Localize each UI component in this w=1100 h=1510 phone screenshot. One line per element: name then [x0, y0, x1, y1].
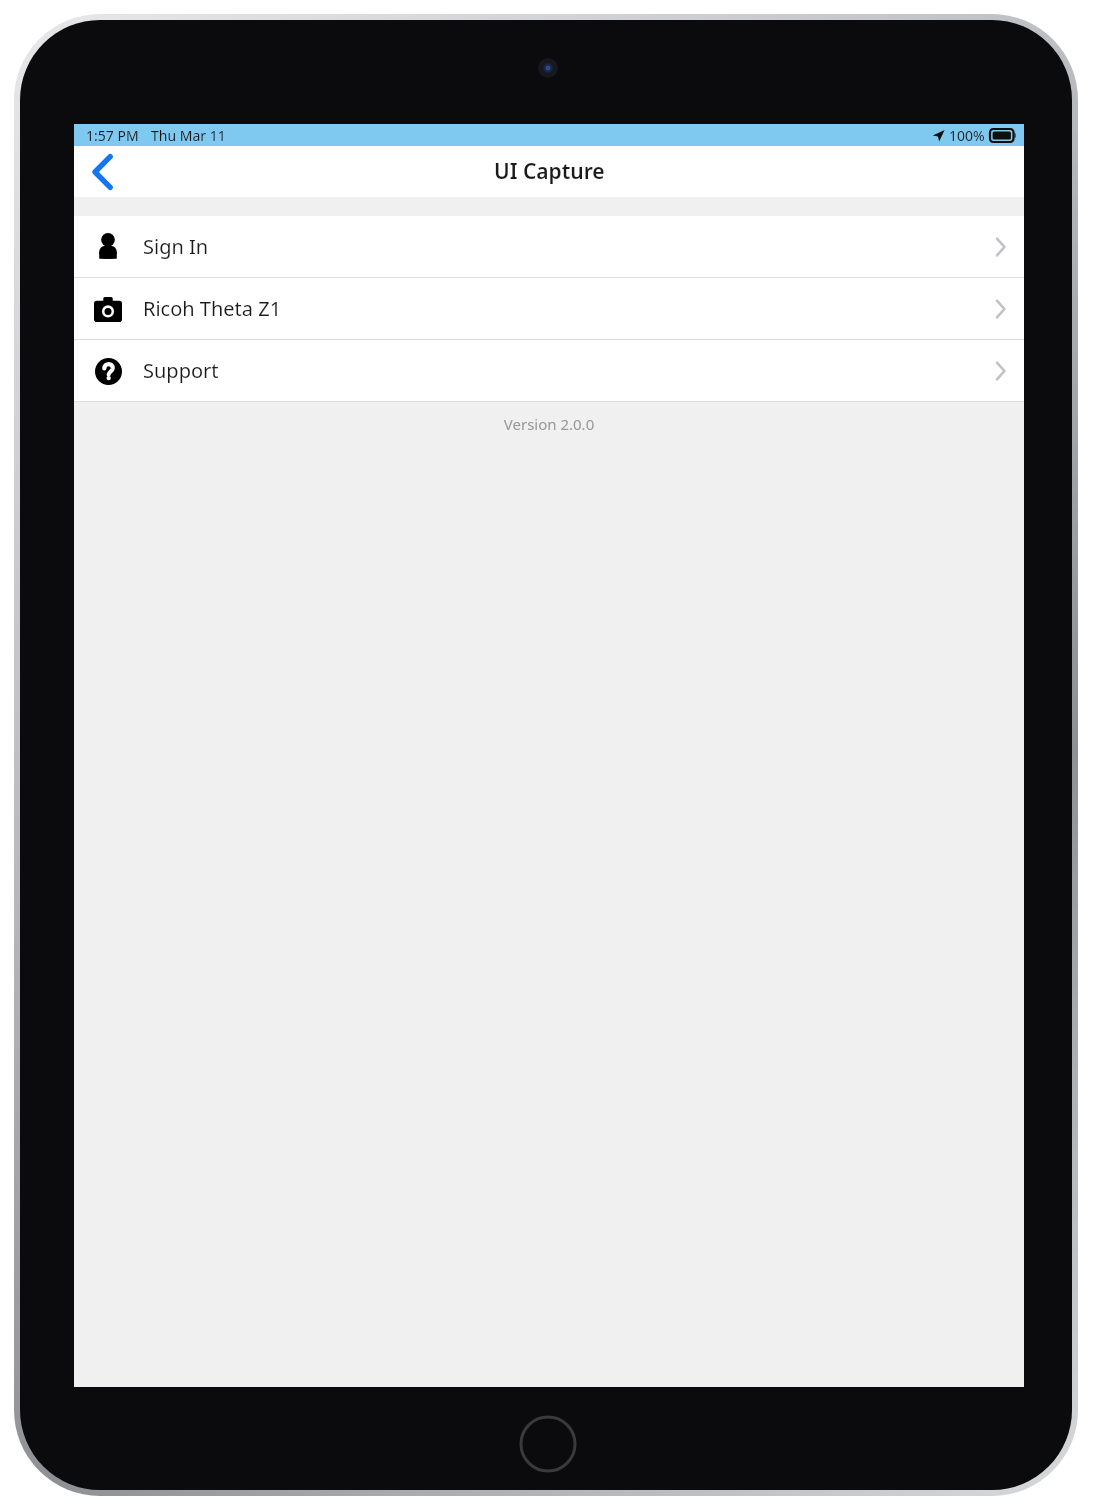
staticText: Support [143, 357, 219, 384]
button[interactable]: Ricoh Theta Z1 [74, 278, 1024, 339]
button[interactable]: Sign In [74, 216, 1024, 277]
staticText: 100% [949, 126, 985, 145]
button[interactable]: Back [74, 146, 132, 197]
staticText: Ricoh Theta Z1 [143, 295, 282, 322]
staticText: 1:57 PM [86, 126, 139, 145]
button[interactable]: Support [74, 340, 1024, 401]
staticText: UI Capture [494, 157, 605, 186]
staticText: Sign In [143, 233, 209, 260]
staticText: Version 2.0.0 [74, 414, 1024, 434]
staticText: Thu Mar 11 [151, 126, 226, 145]
